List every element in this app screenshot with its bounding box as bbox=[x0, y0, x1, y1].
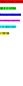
staticText: Sign in to continue bbox=[0, 7, 16, 10]
staticText: +91 98765 43210 bbox=[0, 25, 16, 28]
staticText: Enter your mobile number bbox=[0, 14, 21, 16]
staticText: By continuing you agree to our bbox=[0, 20, 20, 21]
staticText: Continue bbox=[0, 32, 9, 35]
staticText: Welcome back bbox=[0, 0, 23, 3]
